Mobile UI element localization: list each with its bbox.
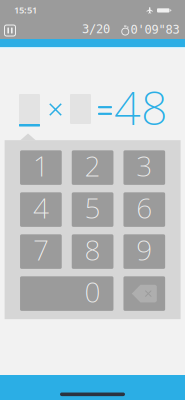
button[interactable]: 3 xyxy=(123,150,165,185)
staticText: 7 xyxy=(33,231,49,268)
button[interactable]: 0 xyxy=(20,276,113,311)
staticText: 9 xyxy=(136,231,152,268)
button[interactable]: 8 xyxy=(72,234,113,269)
button[interactable]: 4 xyxy=(20,192,62,227)
button[interactable]: 9 xyxy=(123,234,165,269)
button[interactable]: 6 xyxy=(123,192,165,227)
staticText: 4 xyxy=(33,189,49,226)
button[interactable]: 2 xyxy=(72,150,113,185)
button[interactable]: 5 xyxy=(72,192,113,227)
staticText: 8 xyxy=(85,231,101,268)
button[interactable]: Pause xyxy=(1,22,18,39)
staticText: 48 xyxy=(114,76,168,138)
button[interactable]: 7 xyxy=(20,234,62,269)
staticText: 1 xyxy=(33,147,49,184)
button[interactable]: 1 xyxy=(20,150,62,185)
staticText: 0 xyxy=(85,273,101,310)
staticText: 3/20 xyxy=(82,22,110,36)
staticText: 15:51 xyxy=(14,4,37,16)
staticText: 0'09"83 xyxy=(130,23,179,36)
staticText: 6 xyxy=(136,189,152,226)
staticText: 3 xyxy=(136,147,152,184)
staticText: 2 xyxy=(85,147,101,184)
button[interactable]: Delete xyxy=(123,276,165,311)
staticText: 5 xyxy=(85,189,101,226)
